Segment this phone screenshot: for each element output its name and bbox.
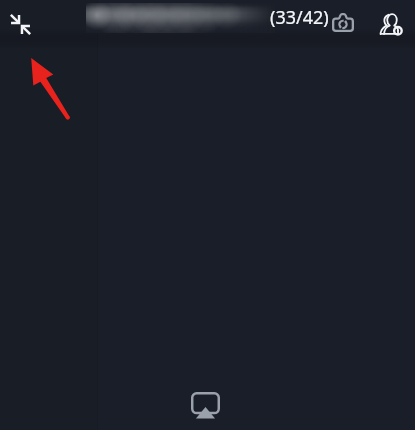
button[interactable]: Switch camera xyxy=(327,6,358,37)
button[interactable]: Participants xyxy=(375,6,406,37)
button[interactable]: Cast xyxy=(180,380,226,426)
button[interactable]: Exit fullscreen xyxy=(0,3,42,45)
staticText: (33/42) xyxy=(270,5,329,30)
